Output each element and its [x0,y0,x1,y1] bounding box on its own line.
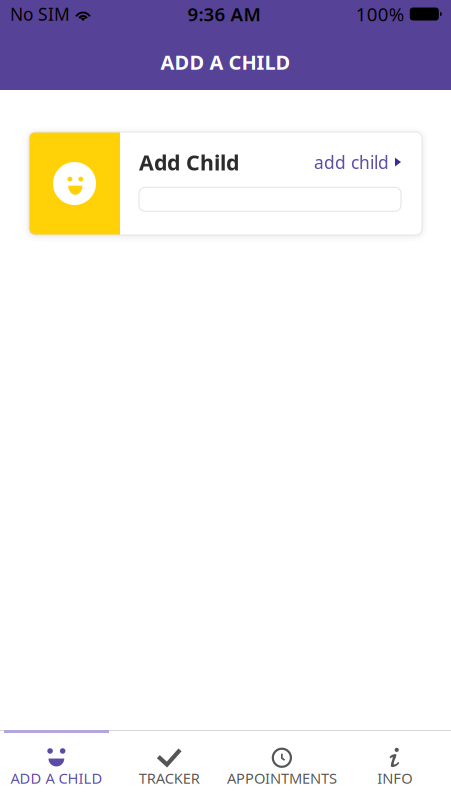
staticText: ADD A CHILD [160,49,290,75]
staticText: 9:36 AM [187,2,260,26]
staticText: TRACKER [139,768,200,788]
staticText: add child [314,151,389,174]
button[interactable]: INFO [338,728,451,800]
staticText: No SIM [10,2,70,25]
staticText: 100% [356,2,405,26]
staticText: INFO [377,768,412,788]
button[interactable]: APPOINTMENTS [225,728,338,800]
staticText: APPOINTMENTS [227,768,337,788]
button[interactable]: add child [314,151,401,174]
staticText: ADD A CHILD [10,768,102,788]
button[interactable]: TRACKER [113,728,226,800]
button[interactable]: ADD A CHILD [0,728,113,800]
staticText: Add Child [139,148,239,176]
